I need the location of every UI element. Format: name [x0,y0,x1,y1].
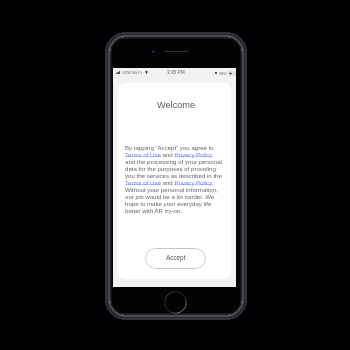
staticText: 38% [219,71,227,75]
staticText: Welcome [157,100,196,110]
staticText: 3:35 PM [167,70,185,75]
staticText: By tapping “Accept” you agree to Terms o… [125,144,223,214]
staticText: Accept [166,254,186,261]
button[interactable]: Accept [145,248,206,269]
staticText: VZW Wi-Fi [122,70,142,75]
